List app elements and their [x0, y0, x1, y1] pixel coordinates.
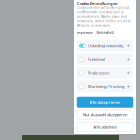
button[interactable]: Marketing / Tracking — [77, 81, 133, 92]
staticText: Alle ablehnen — [93, 124, 116, 129]
staticText: Cookies werden auf Geraten genutzt, um W… — [77, 6, 131, 27]
staticText: Alle akzeptieren — [89, 99, 120, 105]
staticText: Funktional — [88, 57, 105, 62]
staticText: Praferenzen — [88, 70, 109, 75]
button[interactable]: Alle ablehnen — [77, 122, 133, 132]
button[interactable]: Datenschutz — [96, 31, 113, 34]
staticText: Datenschutz — [96, 31, 113, 34]
staticText: Impressum — [77, 31, 93, 34]
button[interactable]: Nur Auswahl akzeptieren — [77, 110, 133, 120]
staticText: Cookie-Einstellungen — [77, 1, 118, 6]
button[interactable]: Alle akzeptieren — [77, 97, 133, 107]
staticText: Unbedingt notwendig — [88, 43, 123, 48]
button[interactable]: Praferenzen — [77, 67, 133, 79]
button[interactable]: Funktional — [77, 53, 133, 65]
button[interactable]: Impressum — [77, 31, 93, 34]
staticText: Marketing / Tracking — [88, 84, 124, 89]
staticText: Nur Auswahl akzeptieren — [83, 112, 127, 117]
button[interactable]: Unbedingt notwendig — [77, 40, 133, 52]
